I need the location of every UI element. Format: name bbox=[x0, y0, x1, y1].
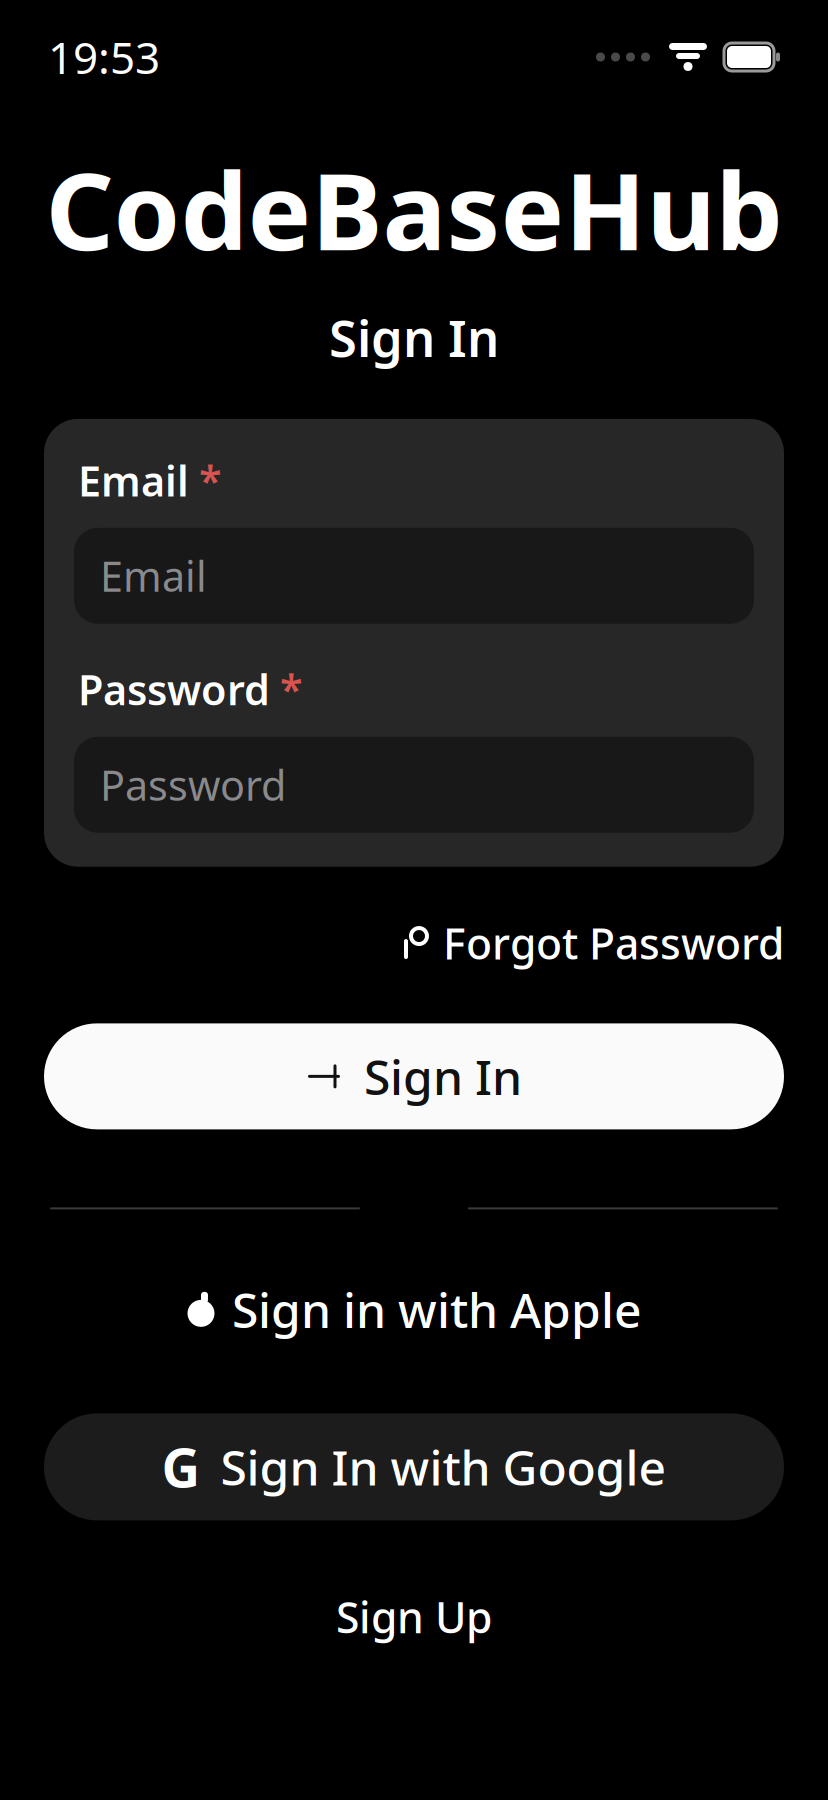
staticText: Forgot Password bbox=[443, 915, 784, 971]
staticText: * bbox=[199, 453, 222, 508]
button[interactable]: Password bbox=[74, 737, 754, 833]
button[interactable]: Sign Up bbox=[308, 1576, 520, 1657]
staticText: Sign in with Apple bbox=[232, 1277, 642, 1341]
staticText: G bbox=[161, 1431, 200, 1502]
staticText: Email bbox=[78, 453, 189, 508]
staticText: 19:53 bbox=[48, 28, 160, 86]
staticText: Password bbox=[78, 662, 270, 717]
staticText: Sign In bbox=[364, 1044, 522, 1108]
button[interactable]: G bbox=[44, 1413, 784, 1520]
button[interactable]: Email bbox=[74, 528, 754, 624]
button[interactable]: Forgot Password bbox=[395, 905, 784, 981]
staticText: CodeBaseHub bbox=[45, 138, 782, 280]
button[interactable]: Sign In bbox=[44, 1023, 784, 1129]
staticText: Sign In bbox=[329, 304, 499, 371]
staticText: Email bbox=[100, 548, 207, 603]
staticText: Password bbox=[100, 757, 286, 812]
staticText: Sign Up bbox=[336, 1588, 492, 1645]
staticText: Sign In with Google bbox=[220, 1435, 666, 1499]
staticText: * bbox=[280, 662, 303, 717]
button[interactable]: Sign in with Apple bbox=[44, 1261, 784, 1357]
